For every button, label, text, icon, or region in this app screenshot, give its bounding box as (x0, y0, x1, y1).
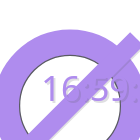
button[interactable]: Watch face showing 16:59 (0, 0, 140, 140)
